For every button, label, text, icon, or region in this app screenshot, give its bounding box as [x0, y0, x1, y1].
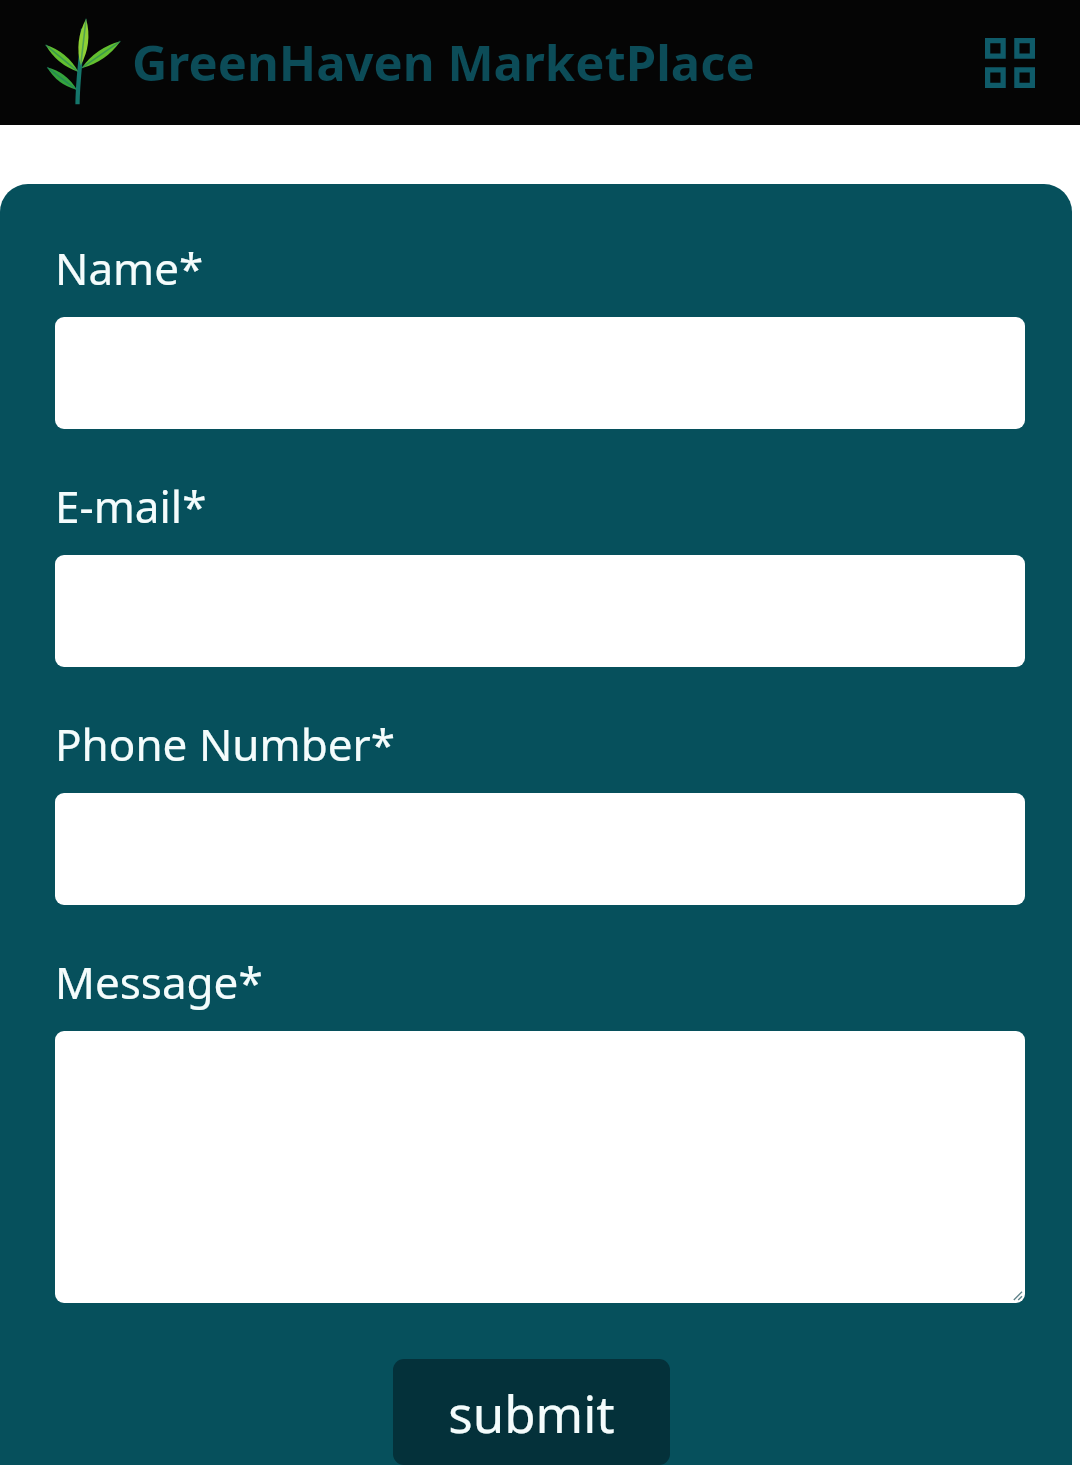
button[interactable]: submit — [393, 1359, 670, 1465]
staticText: Message* — [55, 952, 263, 1012]
button[interactable] — [55, 555, 1025, 667]
button[interactable]: Grid menu — [976, 29, 1044, 97]
button[interactable] — [55, 1031, 1025, 1303]
button[interactable] — [55, 793, 1025, 905]
staticText: Phone Number* — [55, 714, 395, 774]
staticText: E-mail* — [55, 476, 207, 536]
staticText: GreenHaven MarketPlace — [132, 29, 755, 96]
staticText: Name* — [55, 238, 204, 298]
button[interactable] — [55, 317, 1025, 429]
staticText: submit — [448, 1378, 615, 1447]
